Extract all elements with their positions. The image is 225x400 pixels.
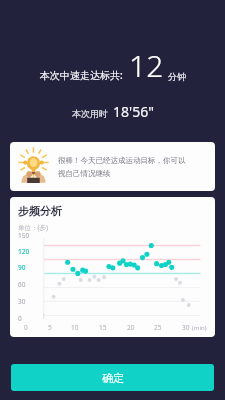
staticText: 90 xyxy=(18,263,26,272)
staticText: 视自己情况继续 xyxy=(58,169,111,178)
staticText: 30 xyxy=(18,297,26,306)
staticText: 本次用时 xyxy=(72,108,108,119)
staticText: 0 xyxy=(24,323,28,332)
staticText: 120 xyxy=(18,247,30,256)
other: Goal achieved trophy xyxy=(17,150,50,183)
staticText: 60 xyxy=(18,280,26,289)
staticText: (min) xyxy=(192,324,207,332)
staticText: 0 xyxy=(18,314,22,323)
button[interactable]: 步频分析 xyxy=(10,197,215,337)
staticText: 20 xyxy=(127,323,135,332)
staticText: 15 xyxy=(99,323,107,332)
button[interactable]: Goal achieved trophy xyxy=(10,142,215,191)
staticText: 分钟 xyxy=(168,71,186,82)
staticText: 本次中速走达标共: xyxy=(40,68,123,82)
staticText: 步频分析 xyxy=(18,204,62,218)
staticText: 25 xyxy=(154,323,162,332)
staticText: 12 xyxy=(129,45,164,86)
staticText: 150 xyxy=(18,231,30,240)
staticText: 18'56" xyxy=(113,102,154,121)
button[interactable]: 确定 xyxy=(11,364,214,391)
staticText: 确定 xyxy=(102,371,124,385)
staticText: 30 xyxy=(182,323,190,332)
staticText: 10 xyxy=(71,323,79,332)
staticText: 5 xyxy=(48,323,52,332)
staticText: 单位：(步) xyxy=(18,223,48,232)
staticText: 很棒！今天已经达成运动目标，你可以 xyxy=(58,156,186,165)
